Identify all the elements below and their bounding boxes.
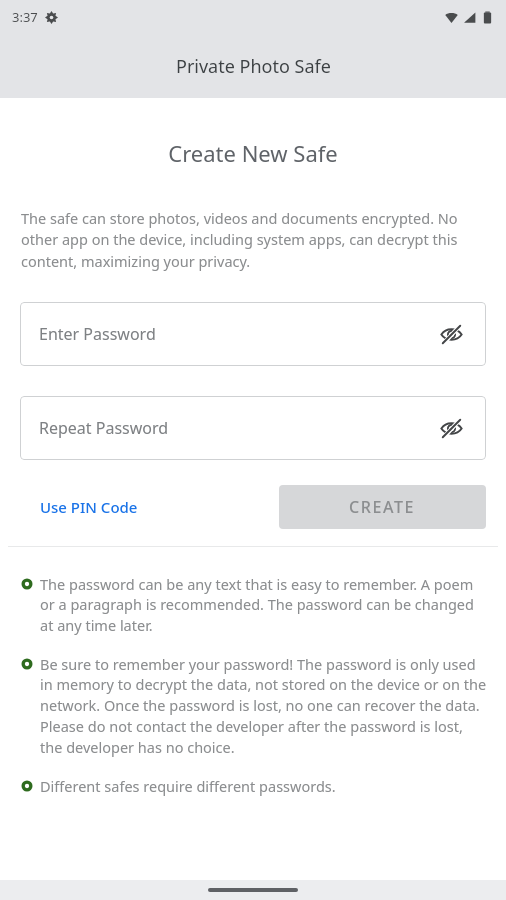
button[interactable]: Show password — [432, 409, 470, 447]
staticText: Be sure to remember your password! The p… — [40, 654, 488, 758]
button[interactable]: Repeat Password — [20, 396, 486, 460]
staticText: The safe can store photos, videos and do… — [21, 208, 485, 272]
button[interactable]: CREATE — [279, 485, 486, 529]
staticText: Enter Password — [39, 323, 156, 345]
button[interactable]: Use PIN Code — [20, 489, 158, 525]
staticText: 3:37 — [12, 8, 38, 26]
staticText: Repeat Password — [39, 417, 169, 439]
staticText: The password can be any text that is eas… — [40, 574, 488, 636]
button[interactable]: Show password — [432, 315, 470, 353]
button[interactable]: Enter Password — [20, 302, 486, 366]
staticText: Use PIN Code — [40, 497, 138, 517]
staticText: Create New Safe — [0, 138, 506, 168]
staticText: Private Photo Safe — [176, 54, 331, 79]
staticText: Different safes require different passwo… — [40, 776, 336, 796]
staticText: CREATE — [349, 496, 416, 518]
